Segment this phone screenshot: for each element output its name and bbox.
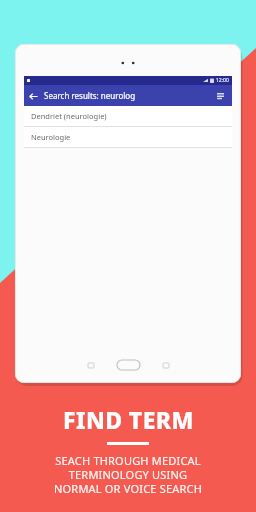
staticText: FIND TERM: [63, 404, 194, 435]
staticText: Neurologie: [31, 132, 71, 142]
button[interactable]: Back: [24, 87, 42, 105]
button[interactable]: Dendriet (neurologie): [24, 106, 232, 127]
button[interactable]: Neurologie: [24, 127, 232, 148]
staticText: 12:00: [216, 77, 229, 84]
staticText: Search results: neurolog: [44, 90, 136, 101]
button[interactable]: Menu: [211, 87, 229, 105]
staticText: Dendriet (neurologie): [31, 111, 107, 121]
staticText: SEACH THROUGH MEDICAL TERMINOLOGY USING …: [54, 453, 202, 496]
